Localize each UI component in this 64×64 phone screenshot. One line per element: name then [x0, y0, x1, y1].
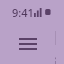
staticText: Library: [54, 24, 56, 64]
button[interactable]: Menu: [8, 24, 48, 64]
staticText: 9:41: [12, 5, 34, 20]
